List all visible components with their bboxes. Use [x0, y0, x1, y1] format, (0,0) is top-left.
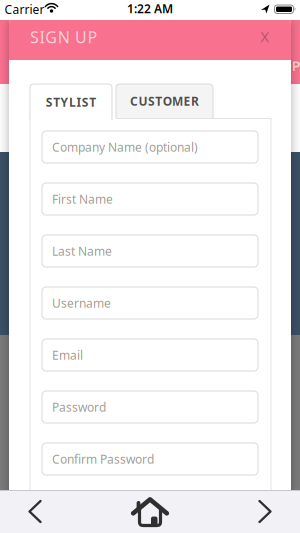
- staticText: Carrier: [4, 1, 44, 17]
- button[interactable]: CUSTOMER: [116, 84, 213, 118]
- button[interactable]: Home: [120, 490, 180, 533]
- button[interactable]: Back: [5, 490, 65, 533]
- staticText: CUSTOMER: [130, 93, 199, 109]
- staticText: P: [291, 56, 300, 75]
- button[interactable]: Forward: [235, 490, 295, 533]
- staticText: First Name: [52, 191, 113, 207]
- staticText: Company Name (optional): [52, 139, 198, 155]
- textField[interactable]: Confirm Password: [52, 451, 268, 467]
- textField[interactable]: Password: [52, 399, 268, 415]
- staticText: X: [260, 27, 269, 46]
- button[interactable]: Close: [254, 25, 276, 47]
- staticText: SIGN UP: [30, 26, 98, 48]
- textField[interactable]: First Name: [52, 191, 268, 207]
- staticText: Username: [52, 295, 111, 311]
- staticText: 1:22 AM: [127, 0, 173, 16]
- textField[interactable]: Username: [52, 295, 268, 311]
- textField[interactable]: Last Name: [52, 243, 268, 259]
- button[interactable]: STYLIST: [30, 84, 112, 120]
- staticText: Email: [52, 347, 83, 363]
- staticText: Last Name: [52, 243, 112, 259]
- staticText: STYLIST: [46, 94, 96, 110]
- textField[interactable]: Email: [52, 347, 268, 363]
- staticText: Confirm Password: [52, 451, 154, 467]
- staticText: Password: [52, 399, 106, 415]
- textField[interactable]: Company Name (optional): [52, 139, 268, 155]
